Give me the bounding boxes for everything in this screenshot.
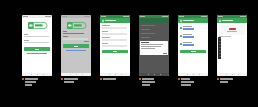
- button[interactable]: Back: [101, 19, 104, 22]
- button[interactable]: [180, 50, 206, 53]
- button[interactable]: [102, 50, 128, 53]
- button[interactable]: [24, 47, 50, 51]
- button[interactable]: [180, 42, 206, 46]
- button[interactable]: App screenshot: [217, 15, 247, 76]
- button[interactable]: App screenshot: [22, 15, 52, 76]
- button[interactable]: [63, 44, 89, 48]
- button[interactable]: App screenshot: [178, 15, 208, 76]
- button[interactable]: [180, 34, 206, 38]
- button[interactable]: [24, 53, 50, 54]
- button[interactable]: Back: [179, 19, 182, 22]
- button[interactable]: [63, 50, 89, 51]
- button[interactable]: Back: [218, 19, 221, 22]
- button[interactable]: [180, 26, 206, 30]
- button[interactable]: App screenshot: [100, 15, 130, 76]
- button[interactable]: App screenshot: [61, 15, 91, 76]
- button[interactable]: [219, 25, 245, 35]
- button[interactable]: App screenshot: [139, 15, 169, 76]
